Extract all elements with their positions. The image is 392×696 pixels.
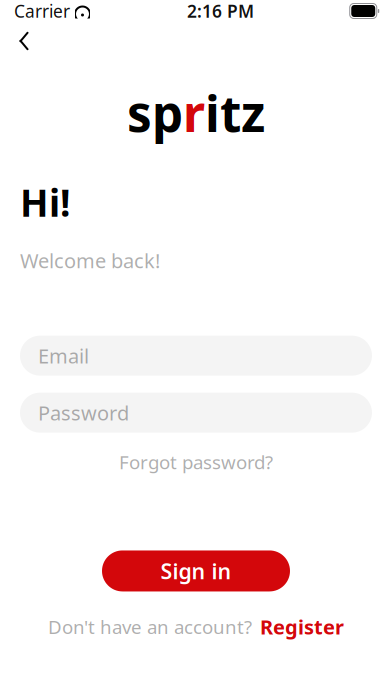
staticText: Sign in [160, 557, 231, 585]
button[interactable]: Back [2, 22, 46, 60]
staticText: Forgot password? [119, 450, 273, 474]
staticText: itz [205, 80, 265, 145]
button[interactable]: Sign in [102, 550, 290, 591]
staticText: r [183, 80, 205, 145]
button[interactable]: Forgot password? [109, 444, 283, 480]
staticText: Welcome back! [20, 247, 160, 274]
button[interactable]: Password [20, 393, 372, 433]
staticText: Register [260, 613, 344, 640]
staticText: Carrier [14, 0, 70, 22]
button[interactable]: Register [260, 613, 344, 640]
staticText [70, 0, 75, 22]
staticText: Don't have an account? [48, 614, 252, 639]
staticText: Password [38, 399, 129, 426]
button[interactable]: Email [20, 336, 372, 376]
staticText: Hi! [20, 177, 71, 227]
staticText: 2:16 PM [187, 0, 254, 22]
staticText: sp [127, 80, 183, 145]
staticText: Email [38, 342, 89, 369]
